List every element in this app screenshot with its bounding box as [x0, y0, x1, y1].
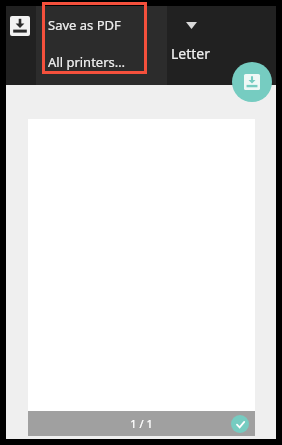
staticText: 1 / 1: [28, 416, 255, 431]
button[interactable]: All printers…: [36, 43, 167, 80]
button[interactable]: Page selected: [231, 415, 249, 433]
staticText: All printers…: [48, 53, 126, 71]
button[interactable]: Paper size dropdown: [178, 14, 204, 36]
button[interactable]: Save as PDF: [232, 62, 272, 102]
button[interactable]: Save as PDF: [36, 6, 167, 43]
staticText: Letter: [171, 44, 211, 63]
button[interactable]: Save as PDF destination: [10, 16, 30, 36]
staticText: Save as PDF: [48, 16, 121, 34]
